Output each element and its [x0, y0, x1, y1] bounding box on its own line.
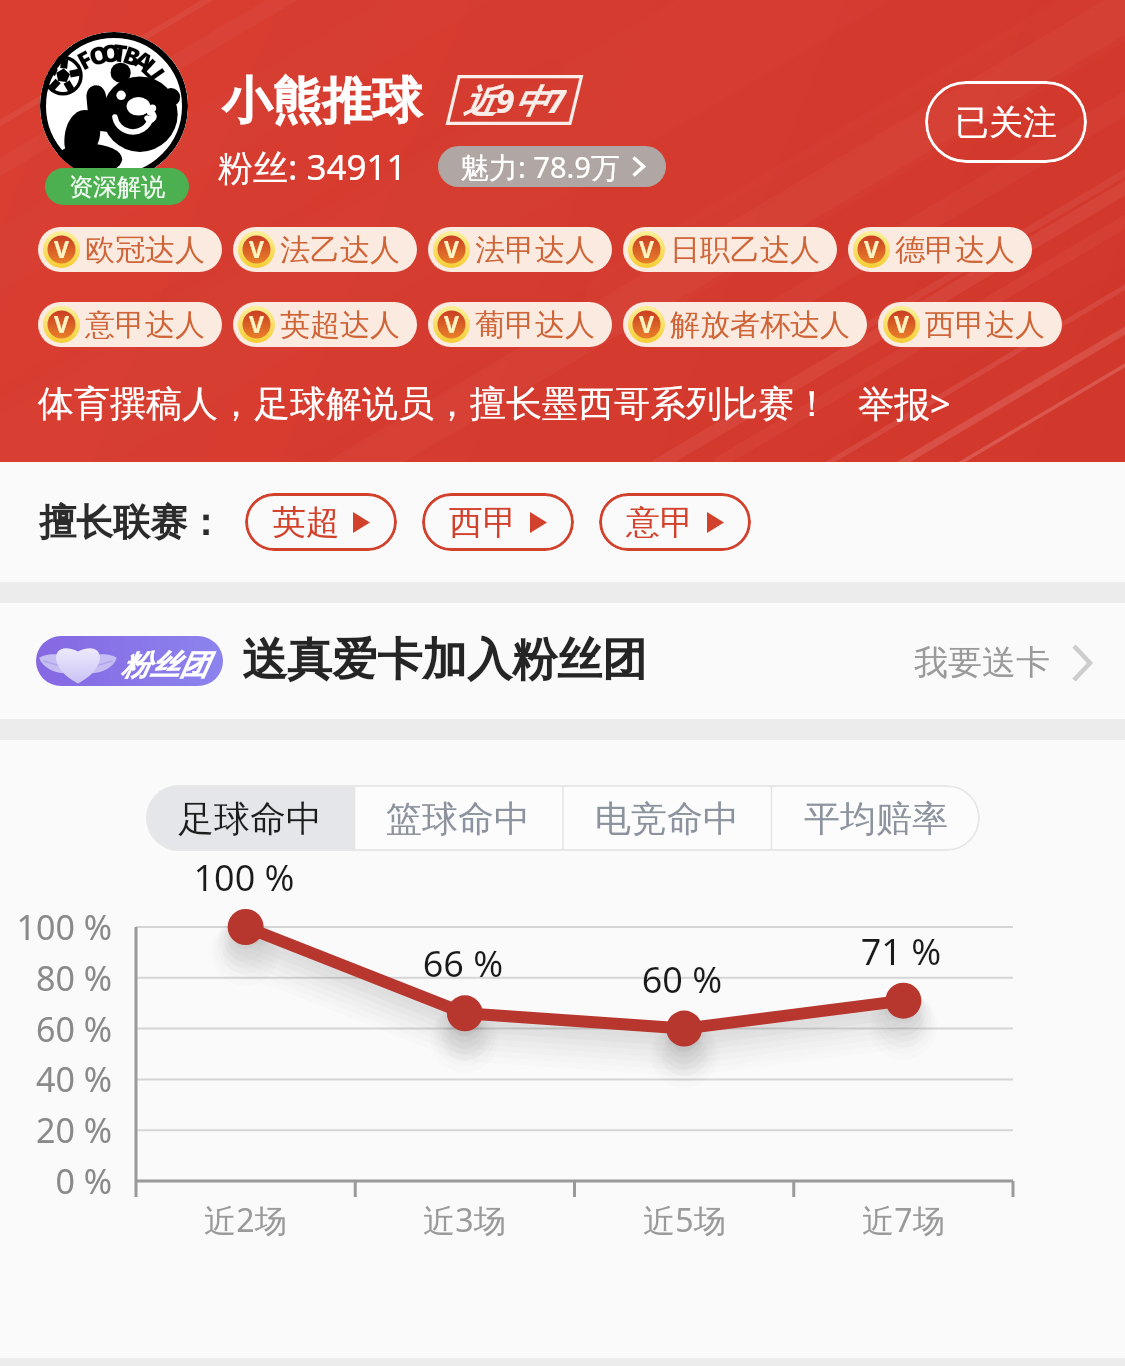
staticText: 71 % [821, 927, 981, 976]
staticText: V [894, 308, 909, 339]
button[interactable]: 足球命中 [146, 785, 354, 851]
button[interactable]: 篮球命中 [354, 785, 562, 851]
staticText: 日职乙达人 [670, 231, 820, 269]
button[interactable]: 粉丝团 [0, 603, 1125, 719]
staticText: 已关注 [955, 101, 1057, 144]
staticText: 20 % [0, 1107, 112, 1153]
button[interactable]: 平均赔率 [771, 785, 980, 851]
staticText: 葡甲达人 [475, 306, 595, 344]
staticText: F [71, 42, 98, 77]
staticText: 近9中7 [463, 78, 566, 123]
staticText: 意甲达人 [85, 306, 205, 344]
button[interactable]: V [428, 302, 612, 347]
staticText: 平均赔率 [804, 796, 948, 841]
button[interactable]: 魅力: 78.9万 [438, 146, 666, 187]
staticText: 篮球命中 [386, 796, 530, 841]
staticText: L [141, 61, 177, 92]
button[interactable]: V [38, 227, 222, 272]
staticText: 近2场 [136, 1198, 355, 1242]
button[interactable]: V [38, 302, 222, 347]
staticText: 资深解说 [69, 172, 165, 202]
staticText: 0 % [0, 1158, 112, 1204]
staticText: V [639, 233, 654, 264]
staticText: 西甲达人 [925, 306, 1045, 344]
staticText: 电竞命中 [595, 796, 739, 841]
button[interactable]: V [623, 227, 837, 272]
staticText: 法乙达人 [280, 231, 400, 269]
staticText: 我要送卡 [914, 641, 1050, 684]
staticText: 英超 [272, 501, 340, 544]
staticText: V [249, 233, 264, 264]
staticText: 英超达人 [280, 306, 400, 344]
button[interactable]: 用户头像 [40, 32, 188, 180]
staticText: 66 % [383, 939, 543, 988]
staticText: 60 % [602, 955, 762, 1004]
staticText: 近7场 [794, 1198, 1013, 1242]
staticText: V [249, 308, 264, 339]
staticText: 德甲达人 [895, 231, 1015, 269]
button[interactable]: 西甲 [422, 493, 574, 551]
staticText: 粉丝: 34911 [218, 143, 407, 191]
button[interactable]: V [878, 302, 1062, 347]
staticText: 80 % [0, 955, 112, 1001]
staticText: A [128, 42, 160, 79]
staticText: 魅力: 78.9万 [460, 147, 620, 187]
staticText: 擅长联赛： [39, 499, 224, 546]
button[interactable]: 举报> [858, 379, 951, 428]
button[interactable]: 资深解说 [45, 168, 189, 205]
staticText: 100 % [164, 853, 324, 902]
staticText: 小熊推球 [222, 70, 422, 133]
staticText: O [85, 36, 113, 73]
staticText: 体育撰稿人，足球解说员，擅长墨西哥系列比赛！ [38, 381, 830, 426]
staticText: 40 % [0, 1056, 112, 1102]
button[interactable]: 电竞命中 [562, 785, 771, 851]
button[interactable]: V [848, 227, 1032, 272]
staticText: 解放者杯达人 [670, 306, 850, 344]
staticText: V [444, 233, 459, 264]
staticText: T [111, 35, 130, 70]
staticText: 近5场 [575, 1198, 794, 1242]
staticText: V [864, 233, 879, 264]
staticText: V [54, 233, 69, 264]
staticText: V [639, 308, 654, 339]
button[interactable]: 我要送卡 [906, 631, 1106, 694]
staticText: O [100, 35, 122, 70]
staticText: V [54, 308, 69, 339]
staticText: 西甲 [449, 501, 517, 544]
button[interactable]: V [233, 227, 417, 272]
staticText: 送真爱卡加入粉丝团 [242, 632, 647, 689]
button[interactable]: V [233, 302, 417, 347]
staticText: 近3场 [355, 1198, 574, 1242]
button[interactable]: V [428, 227, 612, 272]
staticText: B [119, 37, 146, 74]
staticText: 足球命中 [178, 796, 322, 841]
staticText: 100 % [0, 904, 112, 950]
button[interactable]: 已关注 [925, 81, 1087, 163]
staticText: 粉丝团 [121, 647, 208, 684]
button[interactable]: 英超 [245, 493, 397, 551]
staticText: 法甲达人 [475, 231, 595, 269]
staticText: L [135, 51, 167, 84]
staticText: 意甲 [626, 501, 694, 544]
staticText: V [444, 308, 459, 339]
button[interactable]: 意甲 [599, 493, 751, 551]
staticText: 60 % [0, 1006, 112, 1052]
staticText: 欧冠达人 [85, 231, 205, 269]
button[interactable]: V [623, 302, 867, 347]
